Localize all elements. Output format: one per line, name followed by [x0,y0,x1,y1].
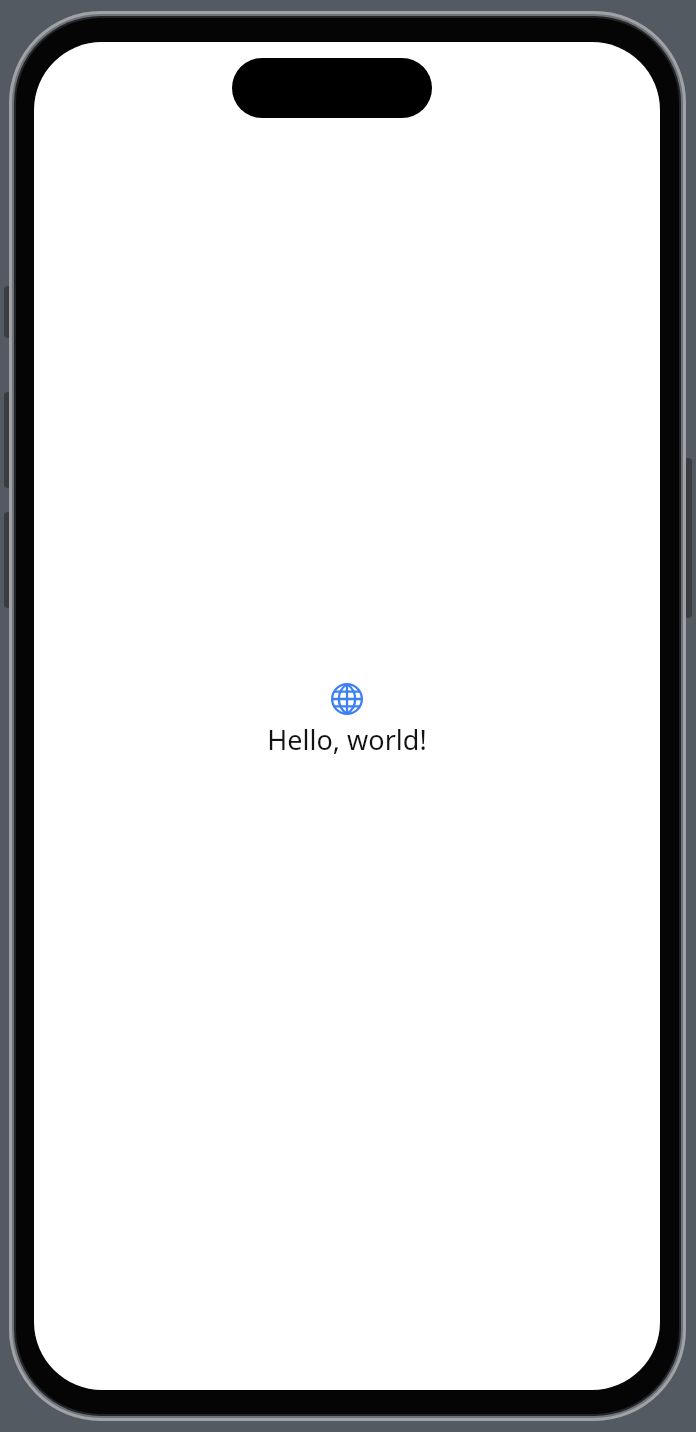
other: Globe [331,683,363,715]
button[interactable] [232,58,432,118]
staticText: Hello, world! [267,721,427,758]
